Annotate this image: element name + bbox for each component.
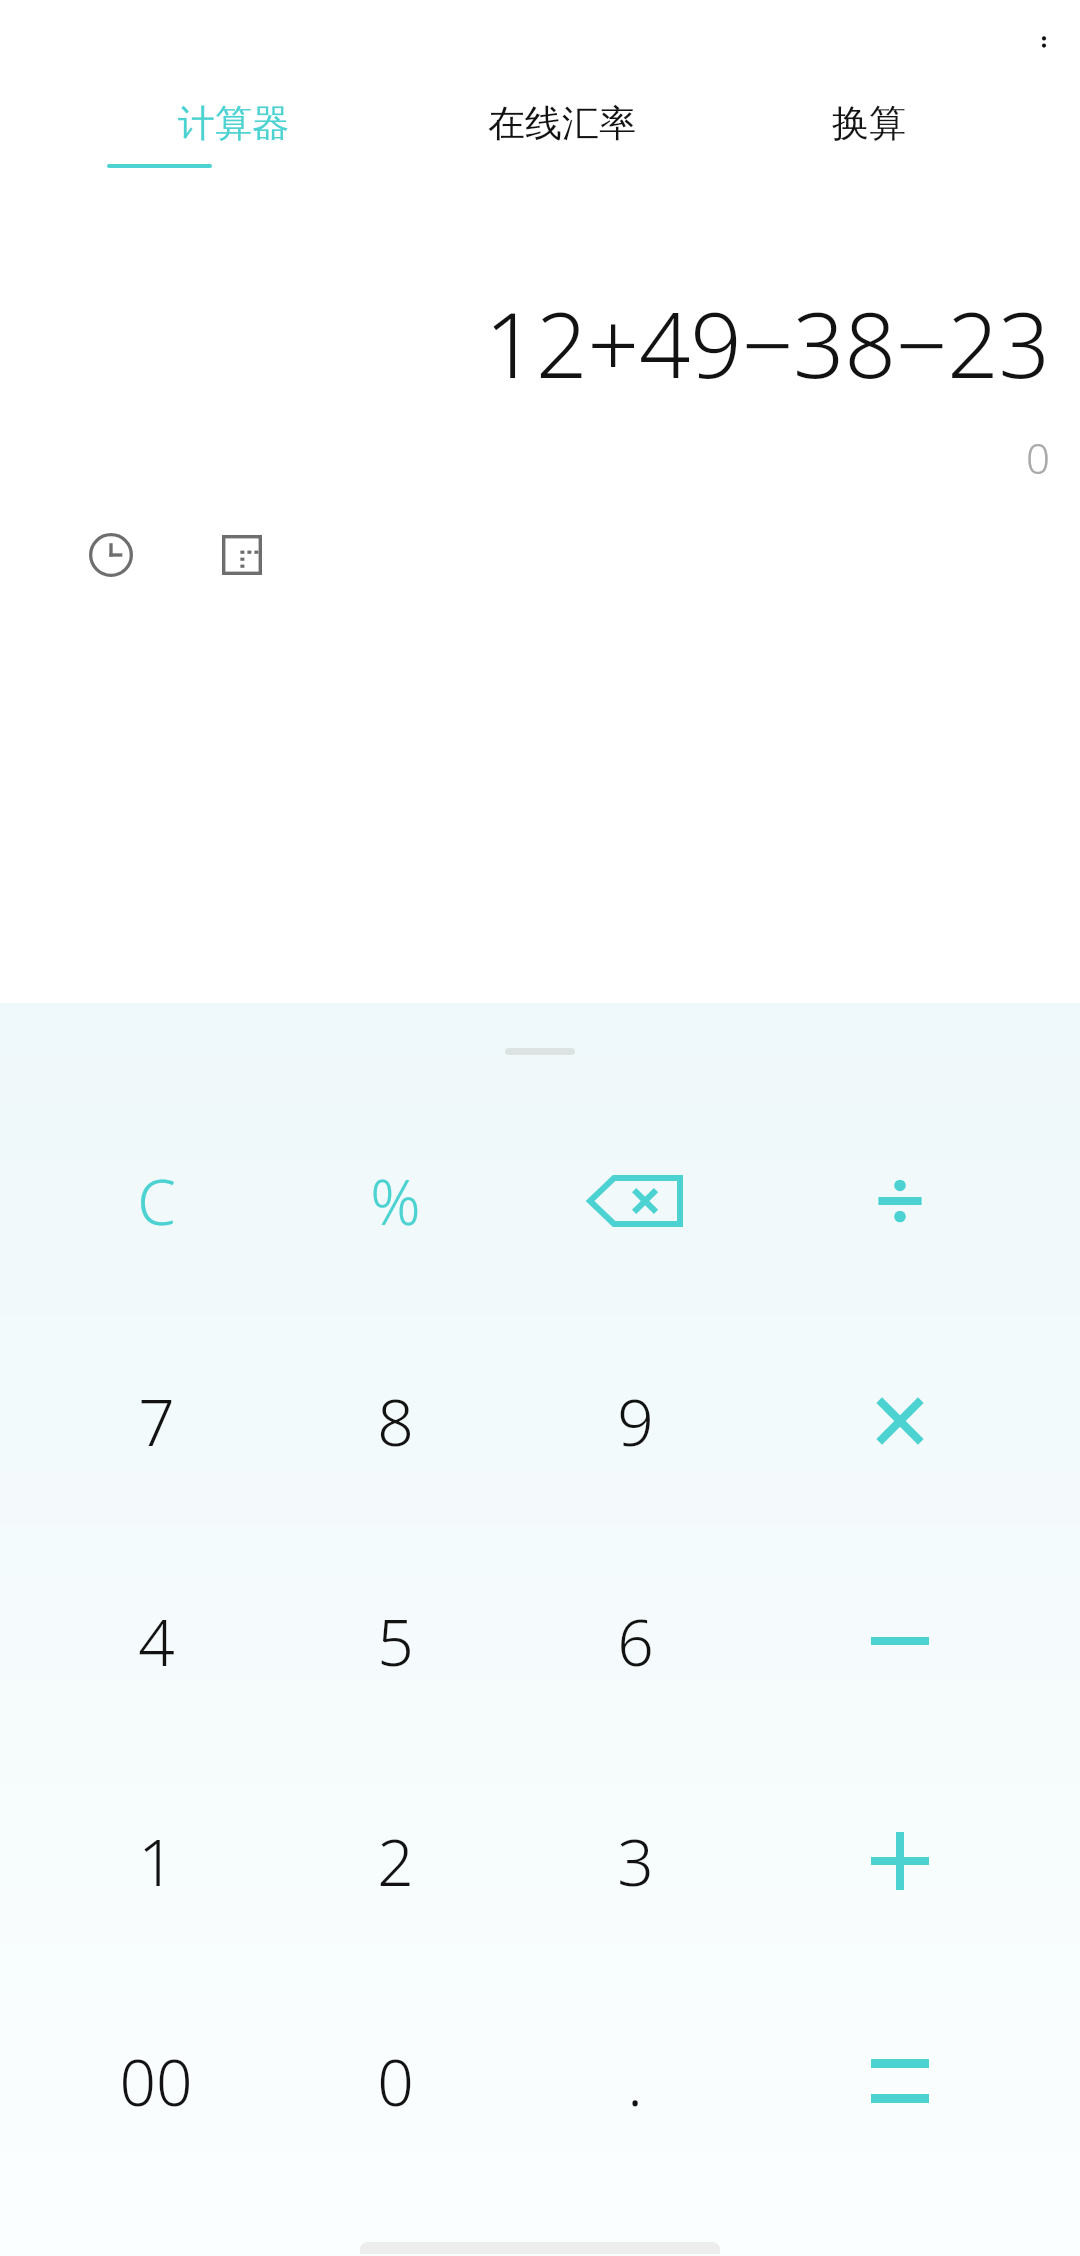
button[interactable]: Multiply <box>780 1311 1020 1531</box>
button[interactable]: 3 <box>515 1751 755 1971</box>
staticText: 6 <box>617 1598 654 1685</box>
staticText: % <box>370 1159 421 1243</box>
button[interactable]: Divide <box>780 1091 1020 1311</box>
button[interactable]: More options <box>1008 6 1080 78</box>
button[interactable]: C <box>36 1091 276 1311</box>
button[interactable]: Equals <box>780 1971 1020 2191</box>
button[interactable]: . <box>515 1971 755 2191</box>
staticText: 00 <box>119 2038 193 2125</box>
button[interactable]: 换算 <box>754 88 984 158</box>
staticText: 计算器 <box>178 100 289 147</box>
button[interactable]: Minus <box>780 1531 1020 1751</box>
staticText: 4 <box>138 1598 175 1685</box>
staticText: 5 <box>377 1598 414 1685</box>
button[interactable]: 1 <box>36 1751 276 1971</box>
staticText: C <box>137 1159 176 1243</box>
button[interactable]: 0 <box>275 1971 515 2191</box>
button[interactable]: 4 <box>36 1531 276 1751</box>
button[interactable]: Backspace <box>515 1091 755 1311</box>
staticText: 1 <box>138 1818 175 1905</box>
staticText: 在线汇率 <box>488 100 636 147</box>
button[interactable]: 5 <box>275 1531 515 1751</box>
staticText: 0 <box>377 2038 414 2125</box>
button[interactable]: Scientific keypad <box>209 522 275 588</box>
staticText: 12+49−38−23 <box>0 282 1050 405</box>
staticText: 9 <box>617 1378 654 1465</box>
button[interactable]: 在线汇率 <box>447 88 677 158</box>
staticText: 0 <box>0 429 1050 486</box>
button[interactable]: 9 <box>515 1311 755 1531</box>
staticText: 2 <box>377 1818 414 1905</box>
button[interactable]: 2 <box>275 1751 515 1971</box>
staticText: . <box>627 2038 643 2125</box>
button[interactable]: History <box>78 522 144 588</box>
button[interactable]: % <box>275 1091 515 1311</box>
staticText: 3 <box>617 1818 654 1905</box>
button[interactable]: 00 <box>36 1971 276 2191</box>
staticText: 7 <box>138 1378 175 1465</box>
button[interactable]: 6 <box>515 1531 755 1751</box>
staticText: 8 <box>377 1378 414 1465</box>
button[interactable]: 8 <box>275 1311 515 1531</box>
staticText: 换算 <box>832 100 906 147</box>
button[interactable]: Plus <box>780 1751 1020 1971</box>
button[interactable]: 计算器 <box>118 88 348 158</box>
button[interactable]: 7 <box>36 1311 276 1531</box>
